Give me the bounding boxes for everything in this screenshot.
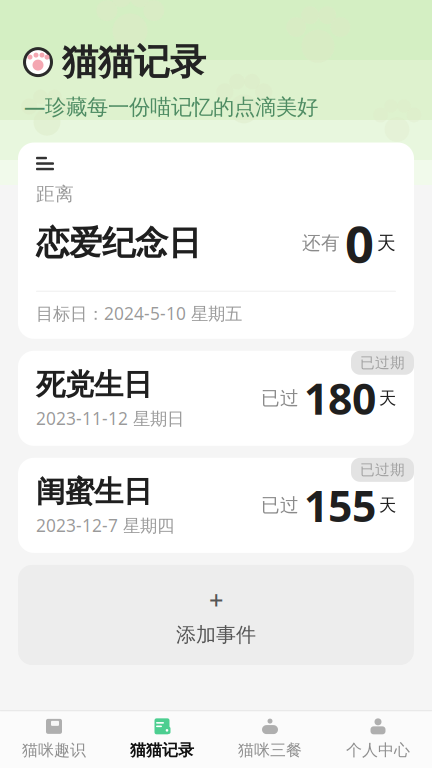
staticText: 天 <box>379 388 396 409</box>
staticText: 已过 <box>261 494 299 517</box>
staticText: 添加事件 <box>176 622 256 647</box>
staticText: 天 <box>379 495 396 516</box>
staticText: 猫咪三餐 <box>238 740 302 760</box>
staticText: 已过期 <box>360 354 405 372</box>
button[interactable]: + <box>18 565 414 665</box>
button[interactable]: 死党生日 <box>18 351 414 446</box>
staticText: 天 <box>377 232 396 255</box>
button[interactable]: 猫猫记录 <box>108 711 216 768</box>
staticText: 2023-11-12 星期日 <box>36 407 184 430</box>
staticText: 0 <box>345 209 374 277</box>
staticText: 恋爱纪念日 <box>36 223 201 263</box>
button[interactable]: 猫咪趣识 <box>0 711 108 768</box>
staticText: 已过期 <box>360 461 405 479</box>
staticText: 死党生日 <box>36 367 152 403</box>
staticText: 猫猫记录 <box>130 740 194 760</box>
staticText: 还有 <box>302 232 340 255</box>
staticText: 猫猫记录 <box>62 40 206 84</box>
button[interactable]: 距离 <box>18 142 414 339</box>
staticText: 距离 <box>36 182 74 205</box>
staticText: 180 <box>304 370 376 427</box>
staticText: 155 <box>304 477 376 534</box>
staticText: 个人中心 <box>346 740 410 760</box>
button[interactable]: 闺蜜生日 <box>18 458 414 553</box>
staticText: 2023-12-7 星期四 <box>36 514 174 537</box>
staticText: 猫咪趣识 <box>22 740 86 760</box>
button[interactable]: 猫咪三餐 <box>216 711 324 768</box>
staticText: 目标日：2024-5-10 星期五 <box>36 302 242 325</box>
staticText: —珍藏每一份喵记忆的点滴美好 <box>24 92 318 120</box>
staticText: + <box>209 583 223 616</box>
staticText: 闺蜜生日 <box>36 474 152 510</box>
button[interactable]: 个人中心 <box>324 711 432 768</box>
staticText: 已过 <box>261 387 299 410</box>
